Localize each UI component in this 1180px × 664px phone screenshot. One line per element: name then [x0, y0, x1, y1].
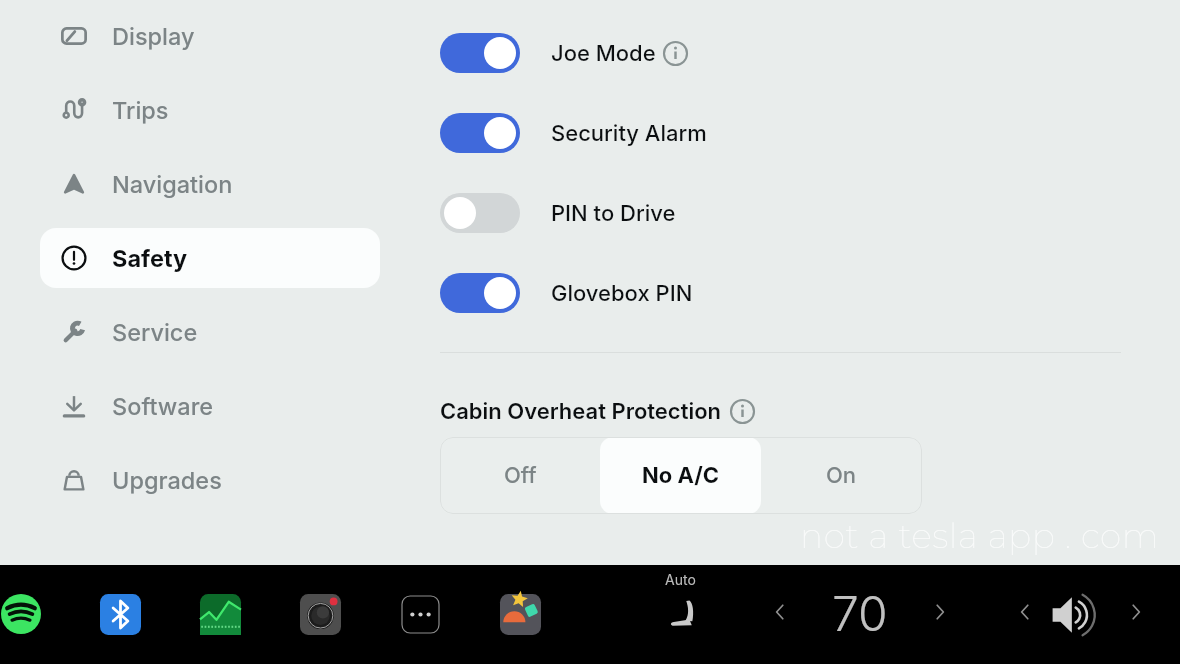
- button[interactable]: On: [761, 437, 922, 514]
- button[interactable]: Energy: [200, 594, 241, 635]
- staticText: 70: [832, 584, 888, 642]
- button[interactable]: Navigation: [40, 154, 380, 214]
- button[interactable]: Decrease temperature: [766, 598, 794, 626]
- staticText: Software: [112, 392, 214, 420]
- staticText: Auto: [665, 571, 696, 588]
- staticText: Joe Mode: [551, 40, 656, 67]
- staticText: Upgrades: [112, 466, 222, 494]
- button[interactable]: Driver seat heater: [668, 597, 697, 626]
- button[interactable]: Safety: [40, 228, 380, 288]
- staticText: No A/C: [642, 462, 719, 489]
- staticText: Cabin Overheat Protection: [440, 398, 722, 425]
- button[interactable]: Decrease volume: [1011, 598, 1039, 626]
- button[interactable]: Software: [40, 376, 380, 436]
- button[interactable]: Increase temperature: [926, 598, 954, 626]
- button[interactable]: Display: [40, 6, 380, 66]
- button[interactable]: Upgrades: [40, 450, 380, 510]
- button[interactable]: Toybox: [500, 594, 541, 635]
- button[interactable]: More apps: [402, 596, 439, 633]
- staticText: Trips: [112, 96, 169, 124]
- staticText: Security Alarm: [551, 120, 707, 147]
- button[interactable]: Service: [40, 302, 380, 362]
- button[interactable]: PIN to Drive: [440, 183, 676, 243]
- button[interactable]: Trips: [40, 80, 380, 140]
- button[interactable]: Off: [440, 437, 600, 514]
- button[interactable]: Joe Mode: [440, 23, 688, 83]
- button[interactable]: No A/C: [600, 437, 761, 514]
- staticText: Service: [112, 318, 198, 346]
- button[interactable]: Security Alarm: [440, 103, 707, 163]
- button[interactable]: Joe Mode info: [663, 41, 688, 66]
- staticText: PIN to Drive: [551, 200, 676, 227]
- button[interactable]: Volume: [1050, 589, 1102, 641]
- button[interactable]: Dashcam: [300, 594, 341, 635]
- staticText: Glovebox PIN: [551, 280, 693, 307]
- staticText: Safety: [112, 244, 188, 272]
- staticText: not a tesla app . com: [800, 515, 1160, 557]
- staticText: Off: [504, 462, 537, 489]
- button[interactable]: Spotify: [1, 594, 41, 634]
- staticText: Display: [112, 22, 195, 50]
- button[interactable]: Increase volume: [1122, 598, 1150, 626]
- button[interactable]: Cabin Overheat Protection info: [730, 399, 755, 424]
- button[interactable]: Glovebox PIN: [440, 263, 693, 323]
- button[interactable]: Bluetooth: [100, 594, 141, 635]
- staticText: Navigation: [112, 170, 233, 198]
- staticText: On: [826, 462, 857, 489]
